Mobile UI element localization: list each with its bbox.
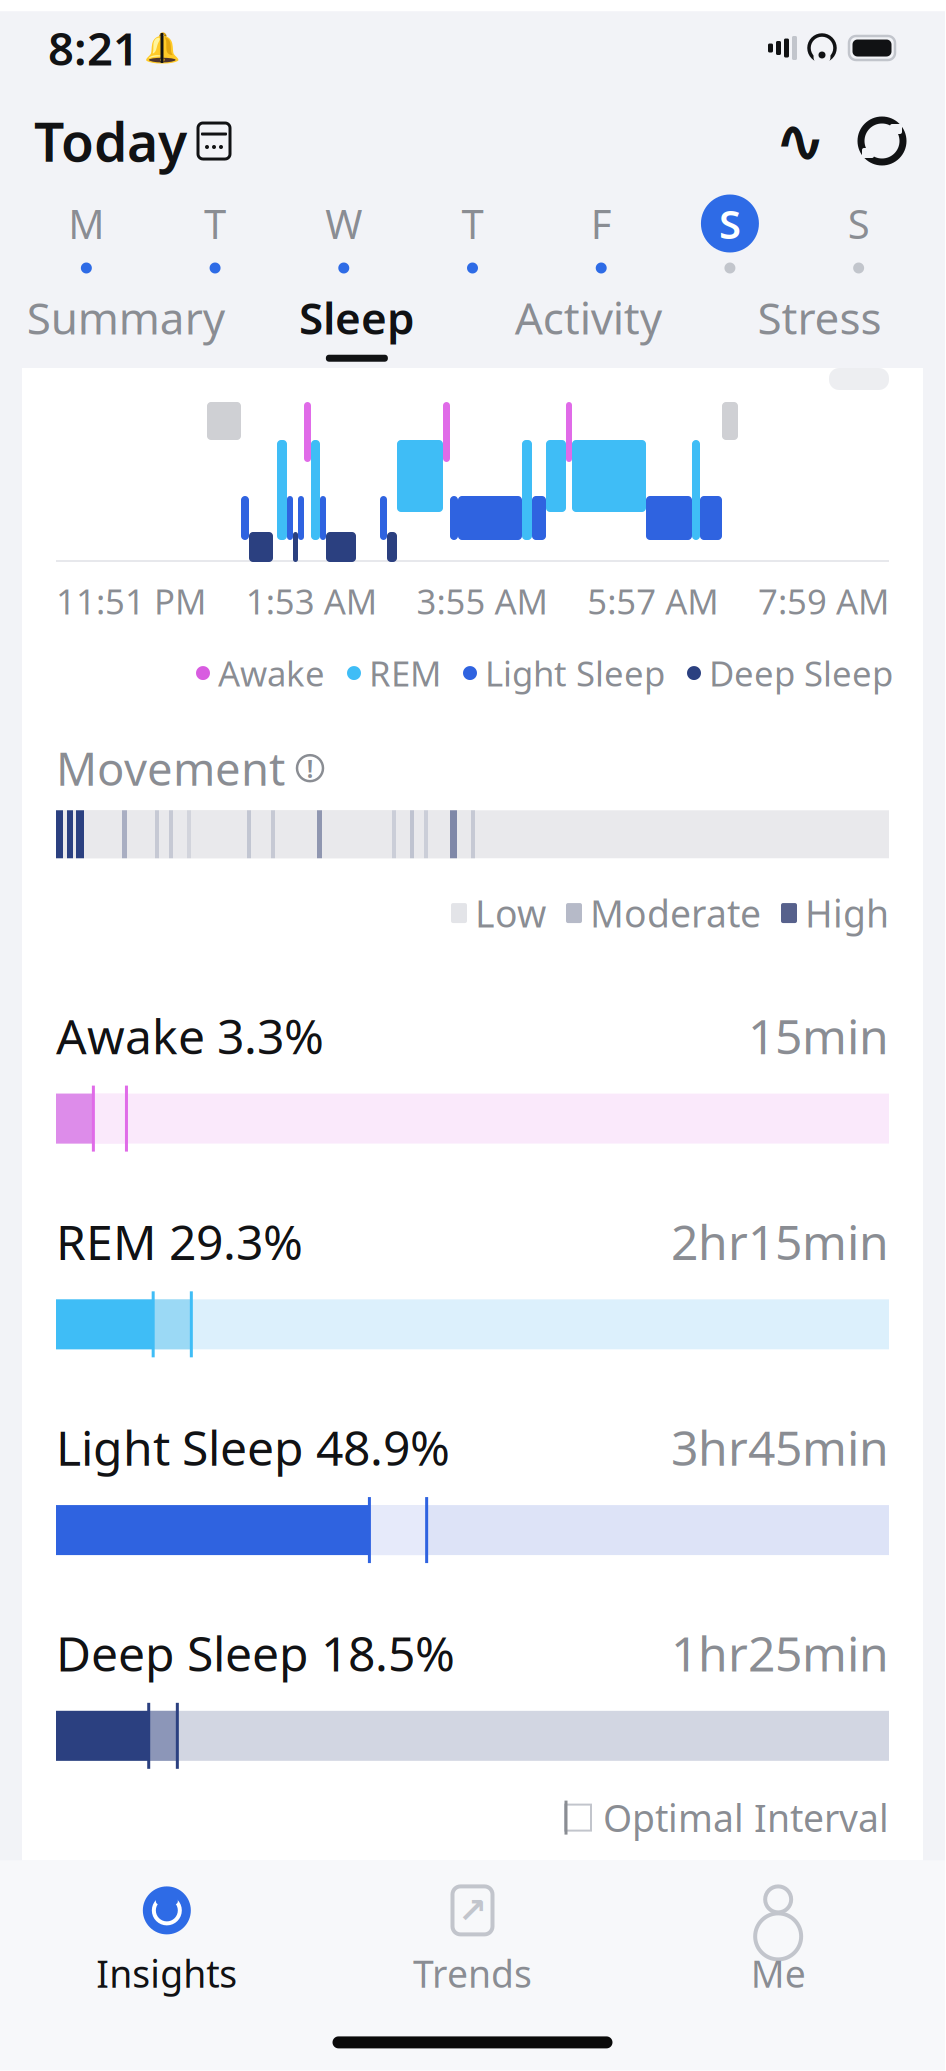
staticText: Light Sleep 48.9% [56,1415,450,1479]
staticText: Optimal Interval [603,1793,889,1842]
staticText: Today [34,106,187,176]
button[interactable]: Today [34,106,231,176]
button[interactable]: Me [625,1884,931,1998]
staticText: Stress [757,288,881,347]
button[interactable]: Insights [14,1884,320,1998]
staticText: T [461,197,483,250]
staticText: 7:59 AM [758,578,889,624]
staticText: ! [306,751,313,785]
staticText: 5:57 AM [587,578,718,624]
button[interactable]: ↗ [320,1884,625,1998]
staticText: Me [751,1948,806,1998]
staticText: Low [475,888,546,938]
button[interactable]: Summary [10,288,241,362]
staticText: 2hr15min [671,1210,889,1273]
staticText: S [719,197,741,250]
button[interactable]: T [408,194,537,273]
staticText: REM [369,650,441,696]
button[interactable]: S [794,194,923,273]
staticText: 15min [748,1004,889,1067]
button[interactable]: Sleep [241,288,473,362]
staticText: 3hr45min [671,1415,889,1479]
staticText: Light Sleep [485,650,665,696]
button[interactable]: S [666,194,794,273]
staticText: Awake 3.3% [56,1004,324,1067]
staticText: W [325,197,362,250]
staticText: S [848,197,870,250]
staticText: Awake [218,650,325,696]
staticText: F [591,197,612,250]
staticText: Moderate [590,888,761,938]
staticText: Deep Sleep [709,650,893,696]
button[interactable]: M [22,194,151,273]
staticText: REM 29.3% [56,1210,303,1273]
staticText: 8:21 [48,18,139,78]
staticText: 3:55 AM [416,578,547,624]
button[interactable]: Sync [853,112,911,170]
staticText: M [68,197,104,250]
button[interactable]: Live metrics [771,112,829,170]
button[interactable]: About movement [295,753,325,783]
staticText: ↗ [458,1891,487,1930]
staticText: 1hr25min [671,1621,889,1685]
button[interactable]: F [537,194,666,273]
staticText: Insights [96,1948,237,1998]
staticText: Activity [515,288,662,347]
button[interactable]: Stress [704,288,935,362]
staticText: Movement [56,738,285,798]
button[interactable]: W [279,194,408,273]
staticText: 🔔 [143,31,180,65]
staticText: T [204,197,226,250]
staticText: Trends [413,1948,532,1998]
staticText: ∿ [774,106,825,176]
staticText: High [805,888,889,938]
button[interactable]: T [151,194,279,273]
button[interactable]: Activity [472,288,704,362]
staticText: Summary [27,288,225,347]
staticText: Sleep [299,288,415,347]
staticText: 11:51 PM [56,578,206,624]
staticText: Deep Sleep 18.5% [56,1621,455,1685]
staticText: 1:53 AM [246,578,377,624]
